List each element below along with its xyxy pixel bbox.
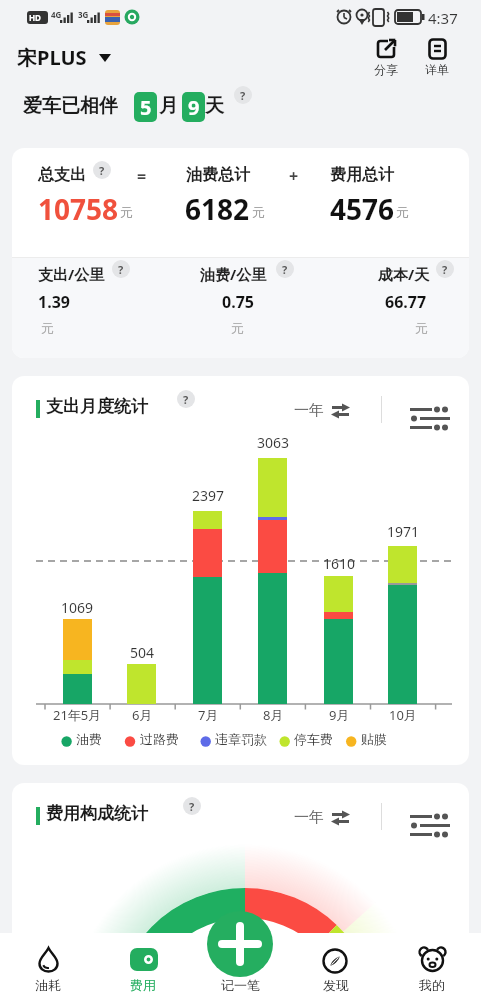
staticText: 元: [120, 204, 133, 220]
staticText: 1.39: [38, 291, 70, 313]
staticText: 油费: [76, 731, 102, 747]
staticText: 总支出: [38, 165, 86, 185]
staticText: 一年: [294, 401, 324, 420]
button[interactable]: [402, 940, 462, 998]
staticText: 8月: [263, 706, 284, 724]
staticText: 发现: [323, 977, 349, 993]
staticText: 1971: [387, 522, 420, 541]
staticText: 9: [188, 94, 200, 121]
staticText: 分享: [374, 62, 398, 77]
staticText: 停车费: [294, 731, 333, 747]
staticText: 6182: [185, 190, 250, 228]
staticText: 7月: [198, 706, 219, 724]
staticText: 记一笔: [221, 977, 260, 993]
staticText: 21年5月: [53, 706, 102, 724]
button[interactable]: [410, 408, 450, 430]
staticText: ?: [189, 799, 195, 814]
staticText: ?: [442, 262, 448, 277]
staticText: 油费总计: [186, 165, 250, 185]
staticText: 支出/公里: [38, 264, 105, 284]
staticText: 10758: [38, 190, 119, 228]
staticText: 4:37: [428, 8, 458, 28]
staticText: 一年: [294, 808, 324, 827]
staticText: 过路费: [140, 731, 179, 747]
staticText: 504: [130, 643, 155, 662]
staticText: 10月: [389, 706, 417, 724]
staticText: +: [289, 165, 299, 187]
staticText: 元: [252, 204, 265, 220]
staticText: 成本/天: [378, 264, 430, 284]
staticText: 4G: [51, 9, 62, 20]
staticText: 元: [396, 204, 409, 220]
staticText: 元: [231, 320, 244, 336]
staticText: 1610: [323, 554, 356, 573]
staticText: 元: [415, 320, 428, 336]
staticText: 3G: [78, 9, 89, 20]
staticText: 2397: [192, 486, 225, 505]
staticText: 贴膜: [361, 731, 387, 747]
button[interactable]: [207, 911, 273, 977]
button[interactable]: [410, 815, 450, 837]
staticText: 5: [140, 94, 152, 121]
staticText: 费用: [130, 977, 156, 993]
staticText: HD: [29, 12, 41, 23]
staticText: 费用构成统计: [46, 803, 148, 824]
staticText: 月: [159, 94, 178, 118]
staticText: 违章罚款: [215, 731, 267, 747]
staticText: 4576: [330, 190, 395, 228]
button[interactable]: [306, 940, 366, 998]
staticText: 油耗: [35, 977, 61, 993]
staticText: 宋PLUS: [17, 44, 87, 71]
staticText: ?: [183, 392, 189, 407]
staticText: 我的: [419, 977, 445, 993]
staticText: 天: [205, 94, 224, 118]
staticText: 元: [41, 320, 54, 336]
button[interactable]: 宋PLUS: [17, 44, 111, 71]
staticText: 3063: [257, 433, 290, 452]
button[interactable]: 分享: [366, 38, 406, 77]
button[interactable]: 一年: [294, 808, 350, 827]
staticText: 油费/公里: [200, 264, 267, 284]
staticText: 费用总计: [330, 165, 394, 185]
staticText: ?: [240, 88, 246, 103]
staticText: ?: [282, 262, 288, 277]
staticText: ?: [99, 163, 105, 178]
staticText: =: [137, 165, 147, 187]
staticText: 6月: [132, 706, 153, 724]
staticText: 详单: [425, 62, 449, 77]
staticText: 爱车已相伴: [23, 94, 118, 118]
button[interactable]: [18, 940, 78, 998]
staticText: 0.75: [222, 291, 254, 313]
staticText: 66.77: [385, 291, 427, 313]
button[interactable]: [114, 940, 174, 998]
button[interactable]: 详单: [417, 38, 457, 77]
staticText: 支出月度统计: [46, 396, 148, 417]
staticText: ?: [118, 262, 124, 277]
staticText: 1069: [61, 598, 94, 617]
button[interactable]: 一年: [294, 401, 350, 420]
staticText: 9月: [329, 706, 350, 724]
